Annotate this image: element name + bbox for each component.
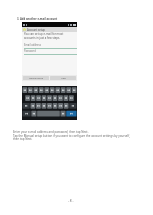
staticText: Next [61, 77, 66, 80]
button[interactable]: Keyboard [22, 86, 77, 120]
button[interactable]: Manual setup [23, 76, 49, 80]
button[interactable]: Next [50, 76, 76, 80]
staticText: Enter your e-mail address and password, … [13, 130, 138, 141]
button[interactable]: Password [24, 49, 77, 55]
other: E-mail [23, 28, 26, 31]
staticText: - 8 - [68, 199, 74, 203]
staticText: Email address [24, 43, 41, 47]
staticText: Manual setup [29, 77, 44, 80]
staticText: Account setup [27, 28, 46, 32]
button[interactable]: E-mail [22, 27, 77, 32]
staticText: You can set up e-mail for most accounts … [24, 32, 64, 40]
staticText: 3. Add another e-mail account [17, 17, 58, 21]
button[interactable]: Email address [24, 43, 77, 49]
staticText: Password [24, 49, 36, 53]
